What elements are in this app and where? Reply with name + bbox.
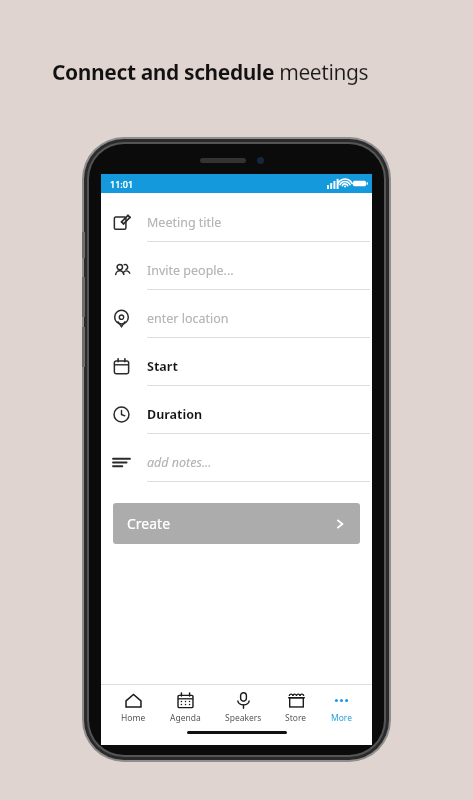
button[interactable]: Meeting title	[101, 203, 372, 251]
staticText: add notes...	[147, 454, 212, 471]
staticText: 11:01	[110, 178, 134, 190]
button[interactable]: Invite people	[101, 251, 372, 299]
button[interactable]: Duration	[101, 395, 372, 443]
staticText: enter location	[147, 310, 229, 327]
button[interactable]: Create	[113, 503, 360, 544]
staticText: Home	[121, 712, 146, 724]
staticText: Agenda	[170, 712, 201, 724]
staticText: Connect and schedule meetings	[52, 58, 369, 87]
staticText: Speakers	[225, 712, 262, 724]
staticText: More	[331, 712, 352, 724]
button[interactable]: Speakers	[221, 689, 266, 727]
button[interactable]: Agenda	[166, 689, 205, 727]
button[interactable]: Start	[101, 347, 372, 395]
button[interactable]: More	[327, 689, 356, 727]
staticText: Invite people...	[147, 262, 234, 279]
button[interactable]: Notes	[101, 443, 372, 491]
button[interactable]: Store	[281, 689, 311, 727]
staticText: Start	[147, 358, 178, 375]
staticText: Create	[127, 514, 171, 533]
button[interactable]: Home	[117, 689, 150, 727]
staticText: Meeting title	[147, 214, 222, 231]
staticText: Duration	[147, 406, 203, 423]
staticText: Store	[285, 712, 307, 724]
button[interactable]: Location	[101, 299, 372, 347]
